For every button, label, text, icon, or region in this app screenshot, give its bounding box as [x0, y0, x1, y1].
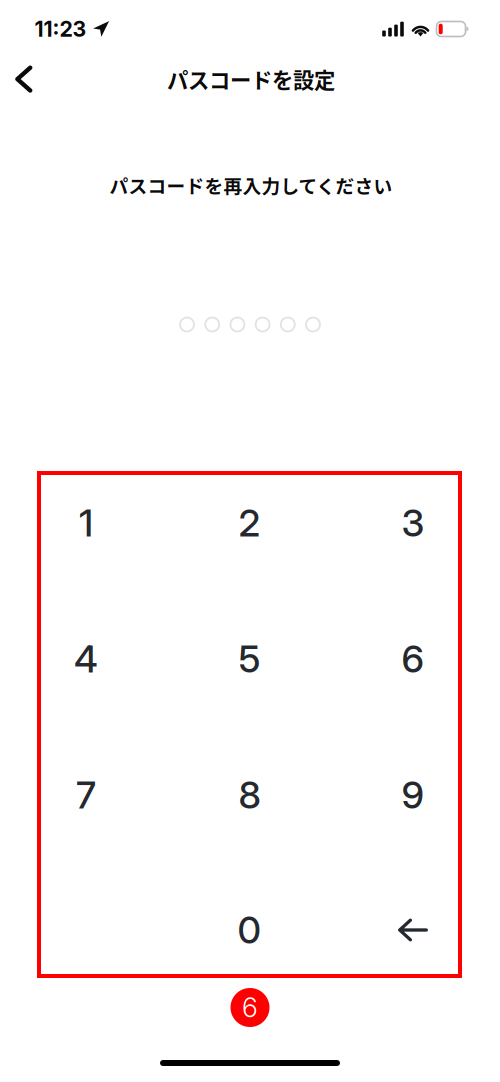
button[interactable]: 5: [174, 596, 324, 722]
staticText: 9: [401, 772, 424, 818]
staticText: 6: [242, 991, 258, 1024]
button[interactable]: 2: [174, 460, 324, 586]
button[interactable]: 1: [11, 460, 161, 586]
staticText: 6: [401, 636, 424, 682]
staticText: 11:23: [34, 16, 86, 42]
button[interactable]: 0: [174, 867, 324, 993]
button[interactable]: 6: [338, 596, 488, 722]
button[interactable]: 3: [338, 460, 488, 586]
staticText: 0: [237, 907, 261, 953]
button[interactable]: 4: [11, 596, 161, 722]
button[interactable]: Back: [0, 55, 51, 103]
staticText: 4: [74, 636, 98, 682]
staticText: パスコードを再入力してください: [109, 171, 392, 198]
staticText: 2: [238, 500, 260, 546]
staticText: 7: [76, 772, 96, 818]
staticText: パスコードを設定: [167, 64, 335, 94]
button[interactable]: 7: [11, 732, 161, 858]
staticText: 8: [238, 772, 260, 818]
button[interactable]: 8: [174, 732, 324, 858]
staticText: 1: [79, 500, 93, 546]
button[interactable]: 9: [338, 732, 488, 858]
button[interactable]: Delete: [338, 867, 488, 993]
staticText: 3: [401, 500, 424, 546]
staticText: 5: [238, 636, 260, 682]
